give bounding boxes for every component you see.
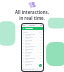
button[interactable]: [22, 57, 43, 60]
button[interactable]: Logo: [28, 2, 37, 8]
button[interactable]: [22, 45, 43, 48]
staticText: in real time.: [19, 15, 45, 21]
button[interactable]: [22, 54, 43, 57]
button[interactable]: [22, 27, 43, 30]
button[interactable]: [22, 60, 43, 63]
staticText: All interactions,: [15, 9, 49, 15]
button[interactable]: [22, 36, 43, 39]
button[interactable]: Compose: [39, 64, 42, 67]
button[interactable]: [22, 42, 43, 45]
button[interactable]: [22, 48, 43, 51]
button[interactable]: [22, 63, 43, 66]
button[interactable]: [22, 51, 43, 54]
button[interactable]: [22, 33, 43, 36]
button[interactable]: [22, 39, 43, 42]
